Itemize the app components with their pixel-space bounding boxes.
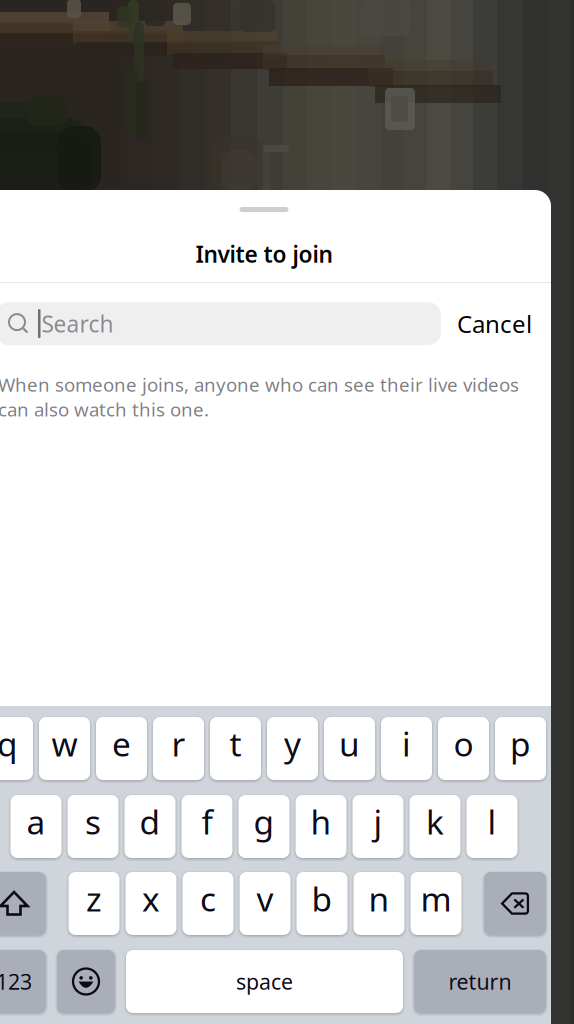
button[interactable]: s — [67, 795, 118, 858]
button[interactable]: i — [381, 717, 432, 780]
button[interactable]: q — [0, 717, 33, 780]
staticText: e — [112, 721, 131, 766]
staticText: c — [200, 876, 216, 921]
staticText: p — [510, 721, 531, 766]
staticText: g — [253, 799, 274, 844]
staticText: v — [256, 876, 273, 921]
staticText: n — [368, 876, 389, 921]
button[interactable]: f — [181, 795, 232, 858]
staticText: d — [139, 799, 160, 844]
staticText: x — [142, 876, 160, 921]
staticText: s — [85, 799, 101, 844]
button[interactable]: a — [10, 795, 61, 858]
staticText: u — [339, 721, 360, 766]
button[interactable]: o — [438, 717, 489, 780]
button[interactable]: return — [414, 950, 546, 1013]
button[interactable]: 123 — [0, 950, 46, 1013]
staticText: When someone joins, anyone who can see t… — [0, 372, 519, 422]
button[interactable]: v — [239, 872, 290, 935]
button[interactable]: x — [125, 872, 176, 935]
staticText: a — [26, 799, 45, 844]
button[interactable]: d — [124, 795, 175, 858]
button[interactable]: e — [96, 717, 147, 780]
button[interactable]: Cancel — [457, 308, 532, 340]
button[interactable]: r — [153, 717, 204, 780]
staticText: o — [453, 721, 473, 766]
button[interactable]: m — [410, 872, 461, 935]
staticText: z — [86, 876, 102, 921]
button[interactable]: n — [353, 872, 404, 935]
staticText: 123 — [0, 967, 32, 996]
button[interactable]: z — [68, 872, 119, 935]
button[interactable]: t — [210, 717, 261, 780]
staticText: Invite to join — [195, 239, 332, 269]
button[interactable]: Shift — [0, 872, 46, 935]
staticText: r — [171, 721, 185, 766]
staticText: b — [311, 876, 332, 921]
staticText: q — [0, 721, 18, 766]
button[interactable]: c — [182, 872, 233, 935]
staticText: space — [236, 967, 293, 996]
button[interactable]: y — [267, 717, 318, 780]
button[interactable]: k — [409, 795, 460, 858]
button[interactable]: Search — [0, 302, 441, 345]
staticText: k — [426, 799, 444, 844]
button[interactable]: l — [466, 795, 517, 858]
staticText: f — [201, 799, 212, 844]
staticText: w — [51, 721, 77, 766]
button[interactable]: g — [238, 795, 289, 858]
staticText: l — [487, 799, 496, 844]
button[interactable]: space — [126, 950, 403, 1013]
button[interactable]: j — [352, 795, 403, 858]
staticText: j — [373, 799, 382, 844]
button[interactable]: h — [295, 795, 346, 858]
button[interactable]: u — [324, 717, 375, 780]
staticText: i — [402, 721, 411, 766]
button[interactable]: Delete — [484, 872, 546, 935]
staticText: t — [229, 721, 241, 766]
staticText: Cancel — [457, 308, 532, 340]
staticText: Search — [41, 309, 113, 339]
button[interactable]: p — [495, 717, 546, 780]
staticText: m — [420, 876, 451, 921]
staticText: return — [448, 967, 511, 996]
button[interactable]: Emoji — [57, 950, 115, 1013]
staticText: y — [284, 721, 301, 766]
button[interactable]: b — [296, 872, 347, 935]
button[interactable]: w — [39, 717, 90, 780]
staticText: h — [310, 799, 331, 844]
